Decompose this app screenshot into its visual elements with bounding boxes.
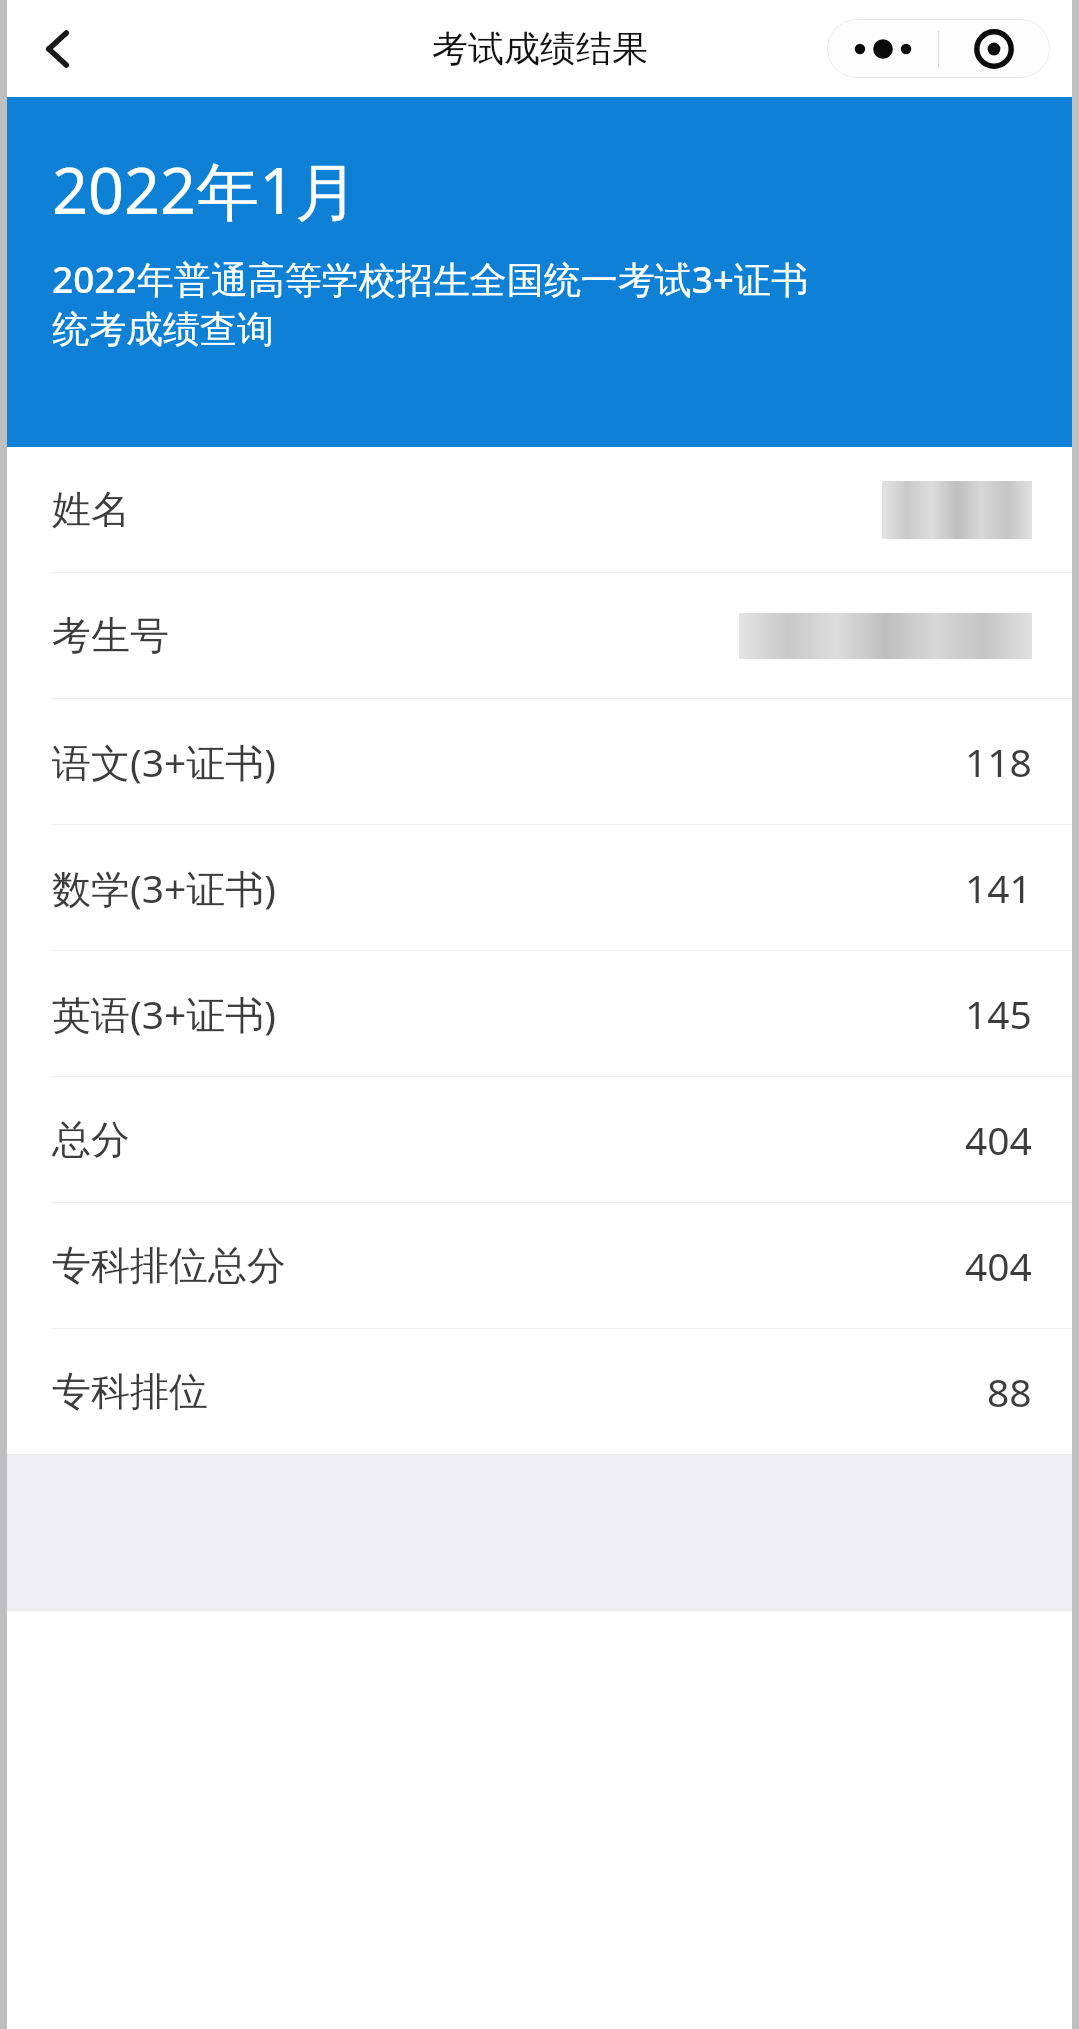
staticText: 141 <box>965 861 1032 914</box>
staticText: 专科排位总分 <box>52 1241 286 1290</box>
button[interactable]: 姓名 <box>7 447 1072 572</box>
button[interactable]: 专科排位总分 <box>7 1203 1072 1328</box>
staticText: 考试成绩结果 <box>432 26 648 71</box>
staticText: 专科排位 <box>52 1367 208 1416</box>
button[interactable]: 考生号 <box>7 573 1072 698</box>
button[interactable]: 关闭 <box>939 19 1049 78</box>
staticText: 姓名 <box>52 485 130 534</box>
staticText: 2022年1月 <box>52 147 359 233</box>
staticText: 语文(3+证书) <box>52 735 277 788</box>
button[interactable]: 返回 <box>13 4 103 94</box>
button[interactable]: 英语(3+证书) <box>7 951 1072 1076</box>
staticText: 145 <box>965 987 1032 1040</box>
button[interactable]: 更多 <box>827 19 938 78</box>
staticText: 88 <box>987 1365 1032 1418</box>
staticText: 英语(3+证书) <box>52 987 277 1040</box>
staticText: 数学(3+证书) <box>52 861 277 914</box>
button[interactable]: 总分 <box>7 1077 1072 1202</box>
staticText: 404 <box>965 1113 1032 1166</box>
button[interactable]: 语文(3+证书) <box>7 699 1072 824</box>
button[interactable]: 专科排位 <box>7 1329 1072 1454</box>
staticText: 404 <box>965 1239 1032 1292</box>
staticText: 总分 <box>52 1115 130 1164</box>
staticText: 考生号 <box>52 611 169 660</box>
button[interactable]: 数学(3+证书) <box>7 825 1072 950</box>
staticText: 2022年普通高等学校招生全国统一考试3+证书 统考成绩查询 <box>52 253 808 353</box>
staticText: 118 <box>965 735 1032 788</box>
